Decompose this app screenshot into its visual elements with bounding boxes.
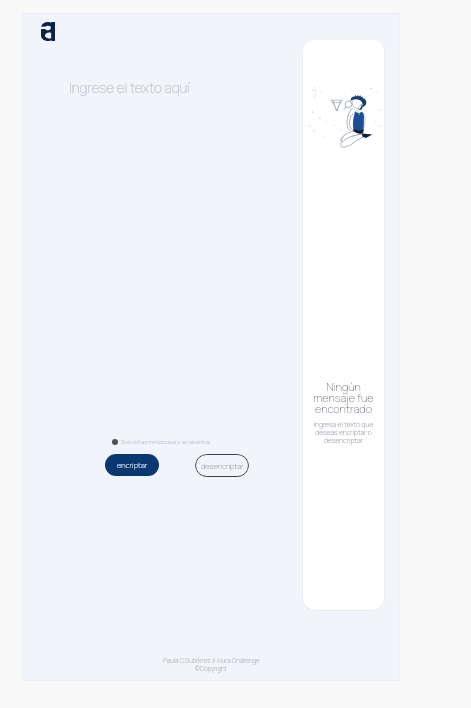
staticText: ©Copyright [195, 664, 227, 672]
staticText: encriptar [117, 460, 148, 470]
button[interactable]: desencriptar [195, 454, 249, 477]
button[interactable]: Alura [30, 14, 64, 46]
staticText: Paula C.Gutiérrez // Alura Challenge [163, 656, 260, 664]
staticText: Ingresa el texto que deseas encriptar o … [306, 420, 381, 445]
staticText: Ingrese el texto aquí [69, 79, 191, 97]
button[interactable]: encriptar [105, 454, 159, 476]
staticText: Solo letras minúsculas y sin acentos [121, 438, 211, 446]
staticText: desencriptar [201, 461, 244, 471]
staticText: Ningún mensaje fue encontrado [306, 379, 381, 416]
